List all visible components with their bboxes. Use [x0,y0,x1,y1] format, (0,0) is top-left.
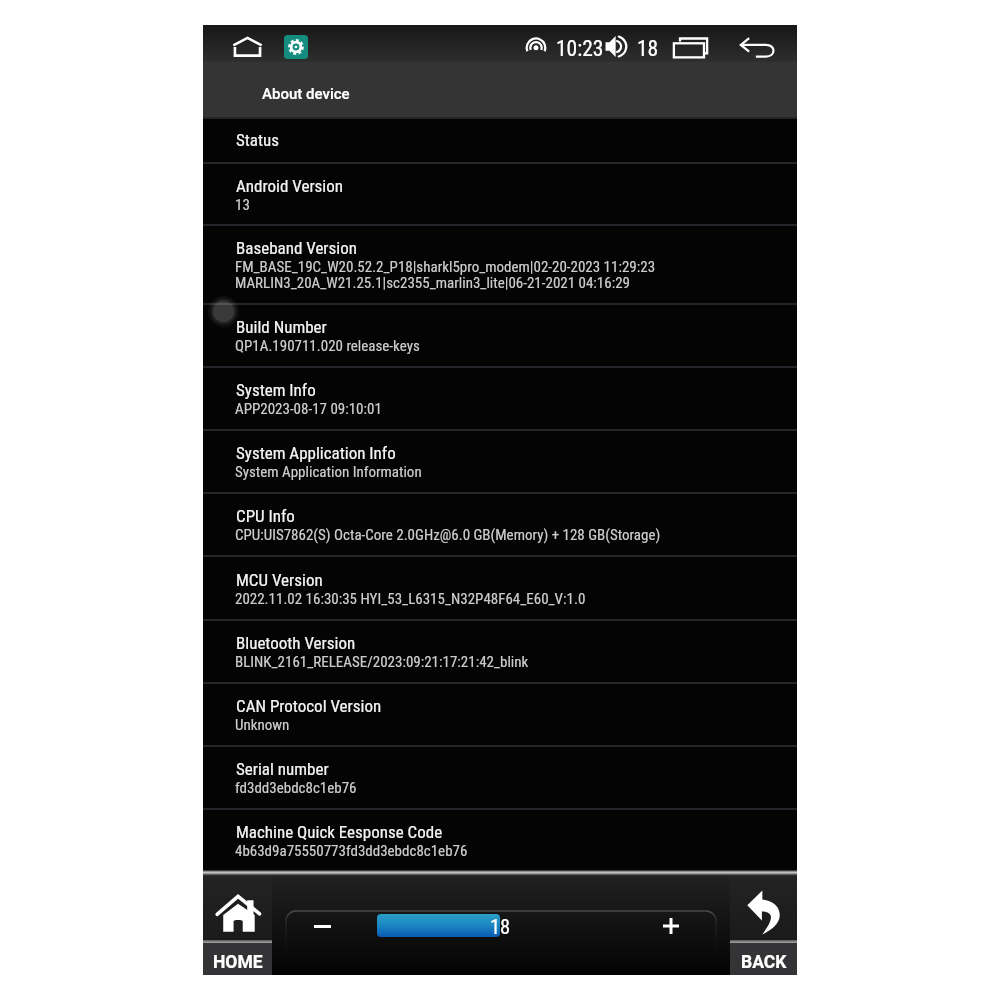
button[interactable] [203,429,797,492]
button[interactable] [203,224,797,303]
button[interactable]: Home [225,29,269,63]
staticText: 13 [235,196,250,214]
staticText: MCU Version [236,570,323,590]
button[interactable] [203,117,797,162]
button[interactable] [203,555,797,618]
button[interactable]: Volume down [300,912,344,940]
button[interactable] [203,366,797,429]
staticText: 18 [637,36,659,61]
staticText: CAN Protocol Version [236,696,382,716]
staticText: APP2023-08-17 09:10:01 [235,400,382,418]
button[interactable]: Recent apps [668,30,713,64]
staticText: BACK [741,952,787,973]
staticText: System Info [236,380,316,400]
button[interactable] [203,492,797,555]
button[interactable] [203,619,797,682]
button[interactable]: HOME [203,876,272,975]
button[interactable] [203,682,797,745]
staticText: About device [262,85,350,103]
button[interactable] [203,303,797,366]
staticText: 4b63d9a75550773fd3dd3ebdc8c1eb76 [235,842,468,860]
staticText: Unknown [235,716,290,734]
button[interactable]: Settings [284,35,308,59]
staticText: Machine Quick Eesponse Code [236,822,443,842]
button[interactable] [203,162,797,224]
staticText: 2022.11.02 16:30:35 HYI_53_L6315_N32P48F… [235,590,586,608]
staticText: 10:23 [556,36,604,61]
staticText: fd3dd3ebdc8c1eb76 [235,779,357,797]
button[interactable]: BACK [730,876,797,975]
button[interactable]: Volume up [651,910,691,942]
staticText: BLINK_2161_RELEASE/2023:09:21:17:21:42_b… [235,653,529,671]
staticText: Serial number [236,759,329,779]
staticText: CPU:UIS7862(S) Octa-Core 2.0GHz@6.0 GB(M… [235,526,661,544]
staticText: QP1A.190711.020 release-keys [235,337,420,355]
staticText: System Application Info [236,443,396,463]
staticText: Status [236,130,279,150]
staticText: Build Number [236,317,327,337]
staticText: HOME [213,952,263,973]
button[interactable]: Back [734,30,782,64]
staticText: FM_BASE_19C_W20.52.2_P18|sharkl5pro_mode… [235,258,656,276]
staticText: 18 [490,915,511,939]
button[interactable] [203,808,797,870]
staticText: Android Version [236,176,343,196]
button[interactable] [203,745,797,808]
staticText: MARLIN3_20A_W21.25.1|sc2355_marlin3_lite… [235,274,630,292]
staticText: Bluetooth Version [236,633,356,653]
staticText: System Application Information [235,463,422,481]
staticText: Baseband Version [236,238,357,258]
staticText: CPU Info [236,506,295,526]
